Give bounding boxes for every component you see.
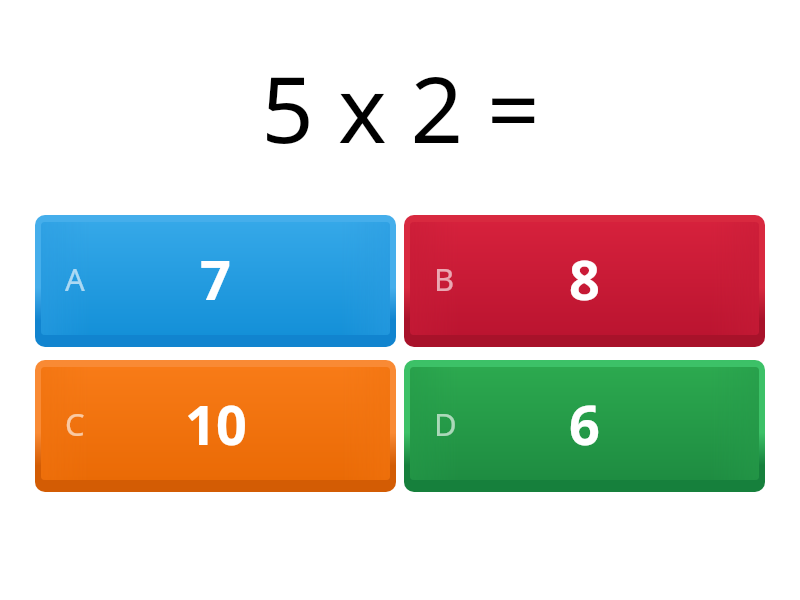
staticText: 6 bbox=[569, 387, 600, 461]
button[interactable]: D bbox=[404, 360, 765, 492]
staticText: D bbox=[434, 403, 457, 445]
staticText: A bbox=[65, 258, 85, 300]
staticText: 10 bbox=[185, 387, 247, 461]
staticText: B bbox=[434, 258, 455, 300]
button[interactable]: A bbox=[35, 215, 396, 347]
staticText: C bbox=[65, 403, 85, 445]
button[interactable]: B bbox=[404, 215, 765, 347]
staticText: 8 bbox=[569, 242, 600, 316]
button[interactable]: C bbox=[35, 360, 396, 492]
staticText: 7 bbox=[200, 242, 231, 316]
staticText: 5 x 2 = bbox=[261, 45, 540, 170]
